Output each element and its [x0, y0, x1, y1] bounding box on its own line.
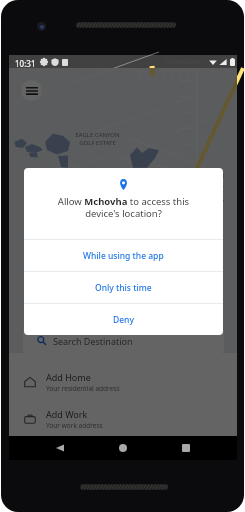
staticText: Only this time — [95, 282, 152, 294]
staticText: Your residential address — [46, 384, 120, 393]
staticText: Allow Mchovha to access this device's lo… — [40, 195, 207, 220]
staticText: Your work address — [46, 421, 103, 430]
button[interactable]: Deny — [24, 304, 223, 335]
button[interactable]: Add Home — [9, 363, 237, 400]
button[interactable]: Search Destination — [23, 328, 224, 353]
button[interactable]: Only this time — [24, 272, 223, 303]
button[interactable]: While using the app — [24, 240, 223, 271]
staticText: Doe Lace Ave — [219, 174, 226, 209]
button[interactable]: Open navigation menu — [21, 80, 42, 101]
staticText: 10:31 — [15, 58, 36, 69]
button[interactable]: Home — [111, 436, 135, 460]
staticText: Add Home — [46, 371, 91, 383]
button[interactable]: Add Work — [9, 400, 237, 437]
staticText: Search Destination — [53, 335, 133, 347]
staticText: EAGLE CANYON GOLF ESTATE — [75, 131, 120, 147]
button[interactable]: Back — [48, 436, 72, 460]
staticText: While using the app — [83, 250, 164, 262]
button[interactable]: Recent apps — [174, 436, 198, 460]
staticText: Deny — [113, 314, 134, 326]
staticText: Add Work — [46, 408, 88, 420]
